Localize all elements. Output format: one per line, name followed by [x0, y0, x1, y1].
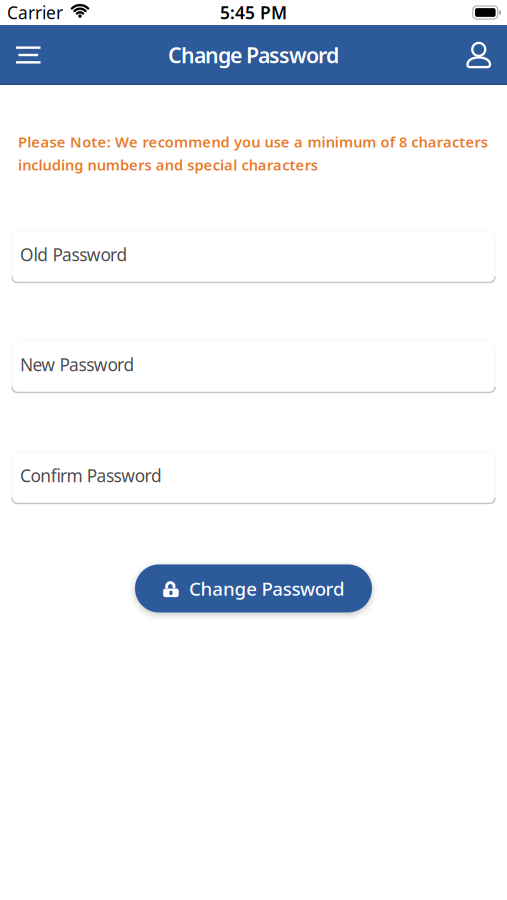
button[interactable]: Profile	[459, 25, 507, 85]
staticText: Change Password	[189, 576, 345, 601]
staticText: New Password	[20, 353, 135, 376]
button[interactable]: Confirm Password	[12, 451, 495, 503]
staticText: Old Password	[20, 243, 128, 266]
staticText: 5:45 PM	[220, 1, 287, 24]
staticText: Please Note: We recommend you use a mini…	[18, 132, 488, 151]
staticText: including numbers and special characters	[18, 155, 318, 174]
button[interactable]: Old Password	[12, 230, 495, 282]
staticText: Confirm Password	[20, 464, 162, 487]
staticText: Carrier	[7, 1, 63, 24]
button[interactable]: Change Password	[135, 564, 372, 612]
button[interactable]: Menu	[0, 25, 48, 85]
button[interactable]: New Password	[12, 340, 495, 392]
staticText: Change Password	[168, 41, 339, 69]
